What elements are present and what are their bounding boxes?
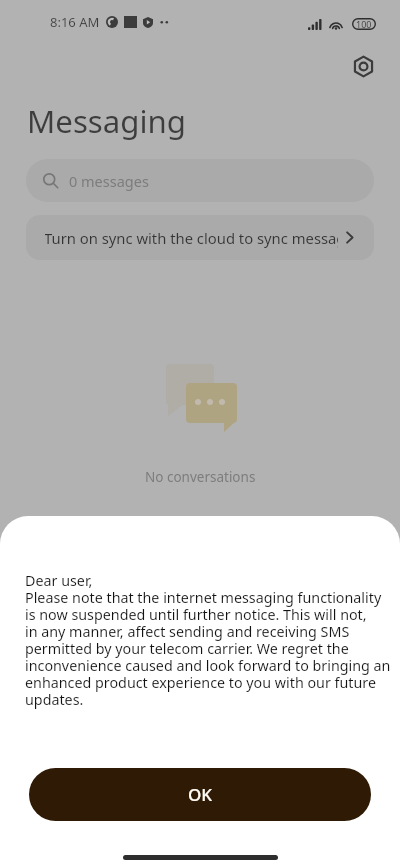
button[interactable]: 0 messages <box>26 159 374 202</box>
staticText: 0 messages <box>69 171 149 191</box>
staticText: Turn on sync with the cloud to sync mess… <box>45 228 338 248</box>
staticText: OK <box>188 783 213 806</box>
staticText: No conversations <box>145 468 256 486</box>
staticText: 100 <box>356 18 372 30</box>
button[interactable]: Turn on sync with the cloud to sync mess… <box>26 215 374 260</box>
staticText: 8:16 AM <box>50 13 100 31</box>
button[interactable]: Settings <box>343 46 383 86</box>
button[interactable]: OK <box>29 768 371 821</box>
staticText: Messaging <box>27 100 186 142</box>
staticText: Dear user, Please note that the internet… <box>25 571 391 710</box>
